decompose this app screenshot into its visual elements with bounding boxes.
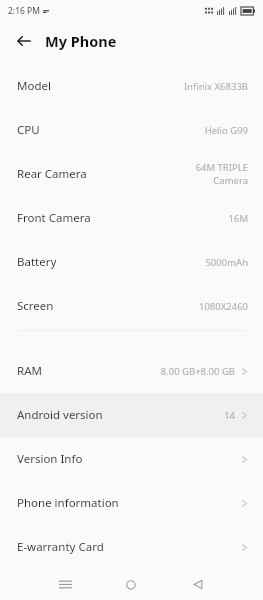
staticText: 14 [224, 409, 235, 422]
staticText: 2:16 PM [8, 5, 40, 17]
staticText: CPU [17, 122, 40, 138]
staticText: 16M [228, 212, 248, 225]
button[interactable]: E-warranty Card [0, 525, 263, 569]
staticText: Phone information [17, 495, 119, 511]
staticText: 1080X2460 [198, 300, 248, 313]
staticText: Model [17, 78, 51, 94]
button[interactable]: Recent apps [48, 569, 82, 600]
staticText: 8.00 GB+8.00 GB [160, 365, 235, 378]
button[interactable]: RAM [0, 349, 263, 393]
button[interactable]: Model [0, 64, 263, 108]
staticText: RAM [17, 363, 42, 379]
staticText: Android version [17, 407, 103, 423]
button[interactable]: Home [114, 569, 148, 600]
button[interactable]: Front Camera [0, 196, 263, 240]
staticText: 5000mAh [205, 256, 248, 269]
staticText: 64M TRIPLE [195, 161, 248, 174]
button[interactable]: Version Info [0, 437, 263, 481]
button[interactable]: Back [10, 27, 38, 55]
button[interactable]: Battery [0, 240, 263, 284]
button[interactable]: Screen [0, 284, 263, 328]
staticText: E-warranty Card [17, 539, 104, 555]
staticText: Version Info [17, 451, 83, 467]
button[interactable]: Phone information [0, 481, 263, 525]
staticText: Screen [17, 298, 54, 314]
button[interactable]: Back [181, 569, 215, 600]
staticText: Front Camera [17, 210, 91, 226]
button[interactable]: Android version [0, 393, 263, 437]
staticText: Rear Camera [17, 166, 87, 182]
staticText: My Phone [45, 31, 117, 51]
button[interactable]: CPU [0, 108, 263, 152]
button[interactable]: Rear Camera [0, 152, 263, 196]
staticText: Infinix X6833B [183, 80, 248, 93]
staticText: Helio G99 [204, 124, 248, 137]
staticText: Camera [213, 174, 248, 187]
staticText: Battery [17, 254, 57, 270]
